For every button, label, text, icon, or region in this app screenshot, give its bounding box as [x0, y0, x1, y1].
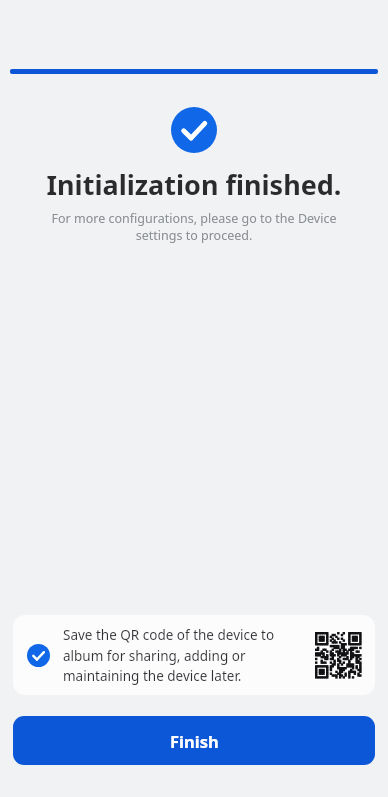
- staticText: Finish: [170, 730, 219, 752]
- staticText: For more configurations, please go to th…: [30, 210, 358, 244]
- staticText: Initialization finished.: [16, 166, 372, 203]
- button[interactable]: Finish: [13, 716, 375, 765]
- staticText: Save the QR code of the device to album …: [63, 626, 305, 685]
- button[interactable]: Save the QR code of the device to album …: [13, 615, 375, 695]
- other: Device QR code: [315, 632, 361, 678]
